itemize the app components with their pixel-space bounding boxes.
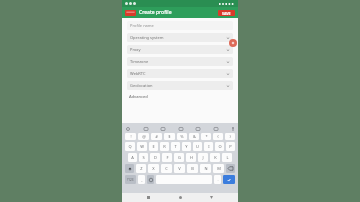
button[interactable]: M (213, 164, 224, 173)
staticText: Y (185, 144, 188, 149)
button[interactable]: WebRTC (127, 69, 233, 78)
button[interactable]: X (148, 164, 159, 173)
staticText: E (152, 144, 155, 149)
button[interactable]: P (226, 142, 235, 151)
button[interactable]: N (200, 164, 211, 173)
staticText: P (229, 144, 232, 149)
staticText: # (155, 134, 158, 139)
button[interactable]: D (150, 153, 160, 162)
button[interactable]: Keyboard tool 4 (195, 126, 200, 131)
staticText: , (141, 177, 143, 182)
staticText: Timezone (130, 59, 149, 64)
staticText: SAVE (222, 11, 231, 16)
staticText: V (178, 166, 181, 171)
button[interactable]: B (187, 164, 198, 173)
button[interactable]: S (139, 153, 148, 162)
button[interactable]: * (201, 133, 211, 140)
staticText: Q (128, 144, 132, 149)
button[interactable]: O (215, 142, 224, 151)
button[interactable]: Keyboard tool 0 (125, 126, 130, 131)
button[interactable]: $ (164, 133, 175, 140)
button[interactable]: W (137, 142, 147, 151)
button[interactable]: Geolocation (127, 81, 233, 90)
button[interactable]: T (171, 142, 180, 151)
staticText: J (202, 155, 204, 160)
staticText: ) (229, 134, 231, 139)
button[interactable]: Add (229, 39, 237, 47)
button[interactable]: Y (182, 142, 191, 151)
staticText: R (163, 144, 166, 149)
button[interactable]: . (214, 175, 221, 184)
staticText: Operating system (130, 35, 164, 40)
button[interactable]: Keyboard tool 3 (178, 126, 183, 131)
button[interactable]: J (198, 153, 208, 162)
button[interactable]: C (161, 164, 172, 173)
button[interactable]: L (222, 153, 232, 162)
button[interactable]: Back (144, 193, 153, 202)
staticText: S (142, 155, 145, 160)
button[interactable]: % (177, 133, 187, 140)
button[interactable]: & (189, 133, 199, 140)
button[interactable]: Timezone (127, 57, 233, 66)
button[interactable]: Keyboard tool 2 (160, 126, 165, 131)
staticText: M (217, 166, 221, 171)
button[interactable]: Symbols (125, 175, 136, 184)
button[interactable]: Advanced (129, 94, 148, 99)
staticText: Profile name (130, 23, 154, 28)
button[interactable]: R (160, 142, 169, 151)
button[interactable]: Shift (125, 164, 134, 173)
staticText: ( (217, 134, 219, 139)
staticText: $ (168, 134, 171, 139)
staticText: O (218, 144, 222, 149)
button[interactable]: Z (136, 164, 146, 173)
staticText: Geolocation (130, 83, 153, 88)
button[interactable]: Keyboard tool 5 (213, 126, 218, 131)
button[interactable]: Enter (223, 175, 235, 184)
button[interactable]: A (128, 153, 137, 162)
button[interactable]: ! (125, 133, 136, 140)
staticText: . (217, 177, 219, 182)
button[interactable]: Q (125, 142, 135, 151)
staticText: % (180, 134, 184, 139)
button[interactable]: # (151, 133, 162, 140)
button[interactable]: G (174, 153, 184, 162)
button[interactable]: Home (176, 193, 185, 202)
button[interactable]: U (193, 142, 202, 151)
button[interactable]: Emoji (147, 175, 154, 184)
staticText: D (154, 155, 157, 160)
button[interactable]: ) (225, 133, 235, 140)
staticText: @ (142, 134, 146, 139)
button[interactable]: V (174, 164, 185, 173)
staticText: B (191, 166, 194, 171)
staticText: ?123 (127, 178, 134, 182)
button[interactable]: F (162, 153, 172, 162)
button[interactable]: K (210, 153, 220, 162)
button[interactable]: Profile name (127, 21, 233, 30)
staticText: & (193, 134, 196, 139)
button[interactable]: H (186, 153, 196, 162)
staticText: K (214, 155, 217, 160)
button[interactable]: Keyboard tool 6 (230, 126, 235, 131)
staticText: U (196, 144, 199, 149)
button[interactable]: E (149, 142, 158, 151)
button[interactable]: Recents (207, 193, 216, 202)
staticText: Create profile (139, 9, 172, 16)
button[interactable]: @ (138, 133, 149, 140)
button[interactable]: Keyboard tool 1 (143, 126, 148, 131)
button[interactable]: Operating system (127, 33, 233, 42)
button[interactable]: Proxy (127, 45, 233, 54)
staticText: H (190, 155, 193, 160)
button[interactable]: App logo (125, 10, 136, 16)
staticText: * (205, 134, 208, 139)
button[interactable]: , (138, 175, 145, 184)
staticText: X (152, 166, 155, 171)
button[interactable]: ( (213, 133, 223, 140)
button[interactable]: I (204, 142, 213, 151)
staticText: W (140, 144, 144, 149)
button[interactable]: Backspace (226, 164, 235, 173)
staticText: A (131, 155, 134, 160)
button[interactable]: SAVE (218, 10, 235, 16)
staticText: Z (140, 166, 143, 171)
staticText: WebRTC (130, 71, 146, 76)
